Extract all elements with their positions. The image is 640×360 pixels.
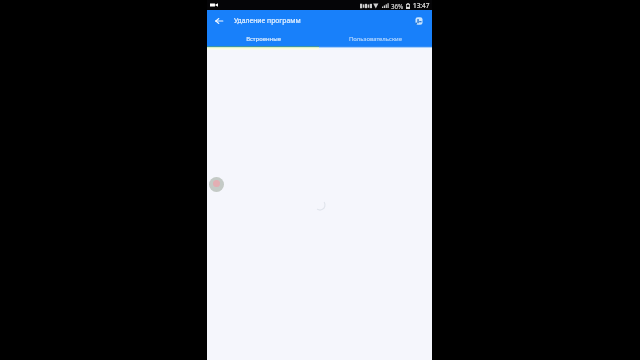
button[interactable]: Refresh — [408, 10, 430, 32]
staticText: Встроенные — [246, 35, 281, 43]
button[interactable]: Встроенные — [207, 32, 319, 46]
staticText: Пользовательские — [349, 35, 402, 43]
staticText: Удаление программ — [234, 16, 301, 25]
staticText: 13:47 — [413, 1, 430, 10]
button[interactable]: Пользовательские — [319, 32, 432, 46]
staticText: 36% — [391, 2, 404, 10]
button[interactable]: Back — [207, 10, 231, 32]
